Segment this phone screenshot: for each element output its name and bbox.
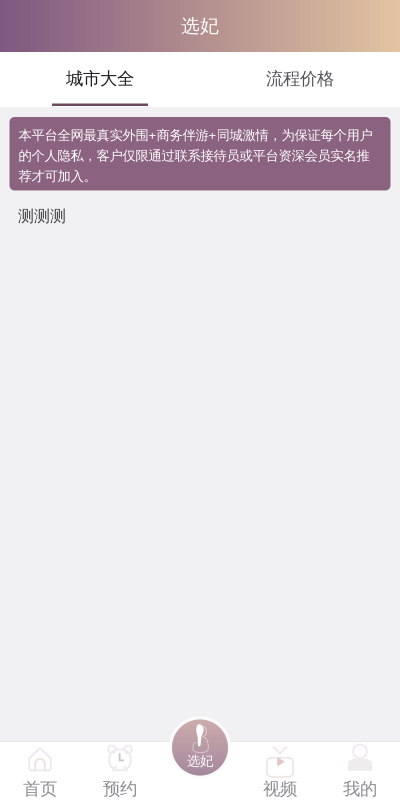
button[interactable]: 流程价格 (200, 52, 400, 107)
staticText: 视频 (263, 778, 297, 800)
button[interactable]: 我的 (320, 741, 400, 802)
button[interactable]: 预约 (80, 741, 160, 802)
staticText: 首页 (23, 778, 57, 800)
staticText: 城市大全 (66, 68, 134, 89)
button[interactable]: 视频 (240, 741, 320, 802)
staticText: 我的 (343, 778, 377, 800)
button[interactable]: 首页 (0, 741, 80, 802)
staticText: 选妃 (187, 753, 213, 769)
button[interactable]: 选妃 (169, 716, 231, 778)
button[interactable]: 城市大全 (0, 52, 200, 107)
staticText: 流程价格 (266, 68, 334, 89)
staticText: 测测测 (18, 206, 66, 226)
staticText: 选妃 (181, 14, 219, 37)
staticText: 本平台全网最真实外围+商务伴游+同城激情，为保证每个用户 的个人隐私，客户仅限通… (18, 126, 372, 184)
staticText: 预约 (103, 778, 137, 800)
